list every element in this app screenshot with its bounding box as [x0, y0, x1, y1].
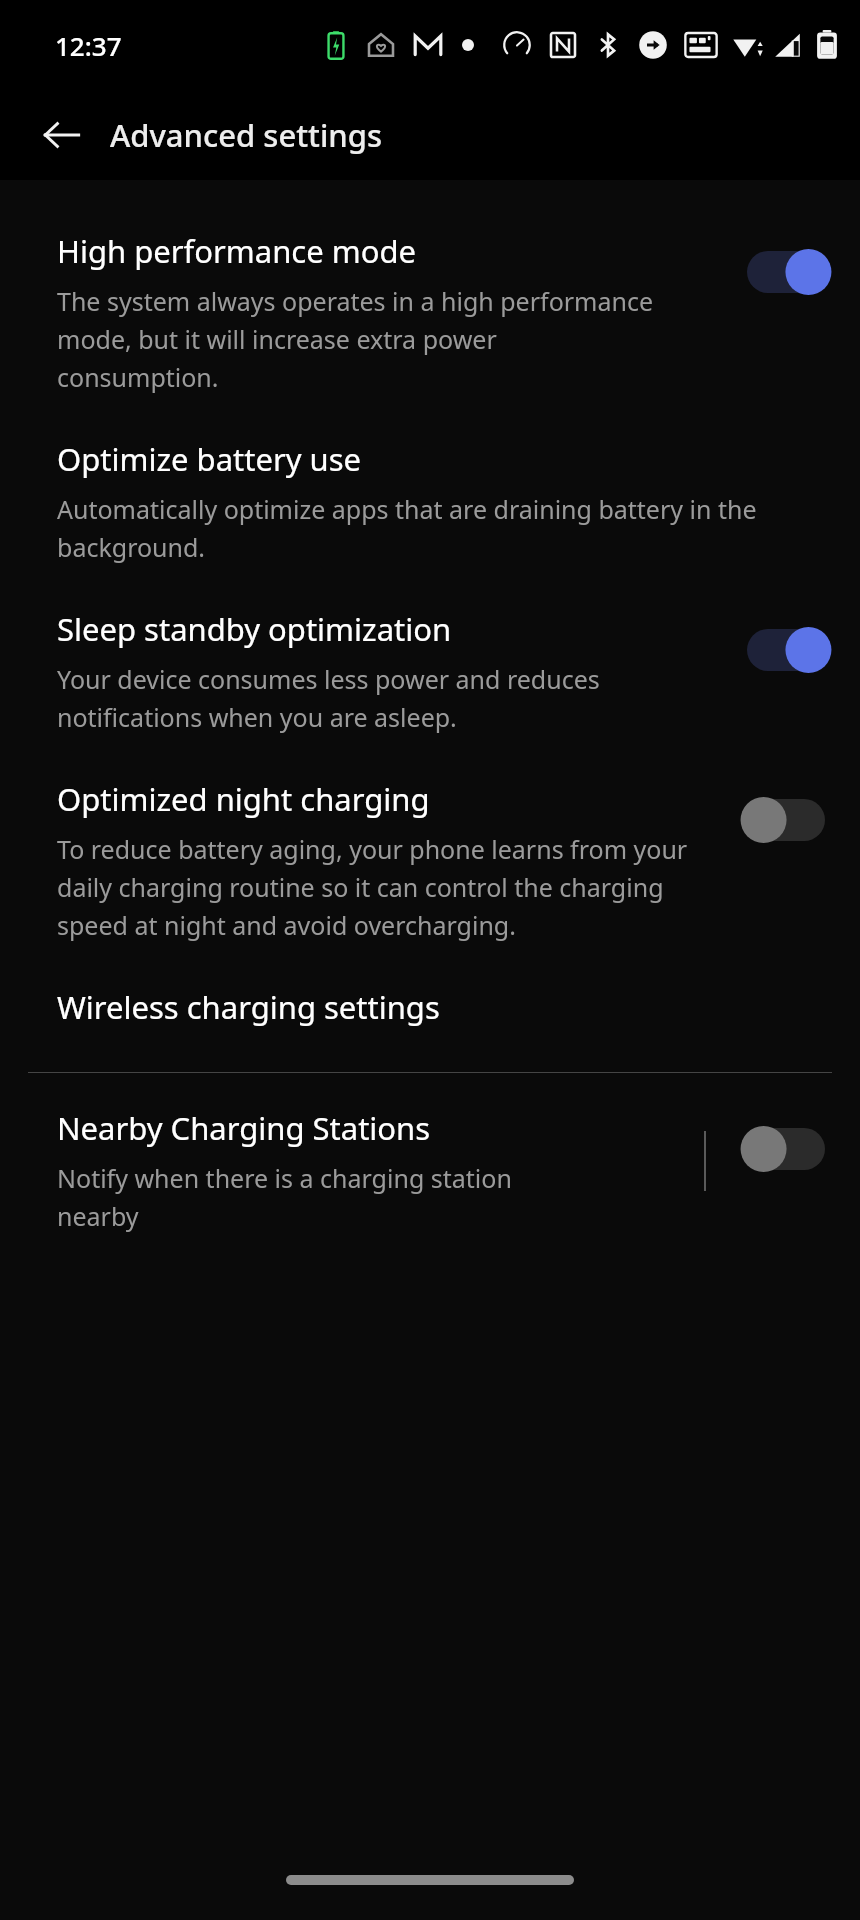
staticText: Automatically optimize apps that are dra… — [57, 492, 817, 564]
staticText: Optimized night charging — [57, 778, 430, 820]
staticText: Notify when there is a charging station … — [57, 1161, 577, 1233]
button[interactable]: High performance mode — [0, 208, 860, 416]
button[interactable]: Back — [32, 105, 92, 165]
staticText: Wireless charging settings — [57, 986, 440, 1028]
button[interactable]: Toggle on — [736, 624, 836, 676]
staticText: Nearby Charging Stations — [57, 1107, 431, 1149]
staticText: High performance mode — [57, 230, 417, 272]
button[interactable]: Sleep standby optimization — [0, 586, 860, 756]
button[interactable]: Toggle off — [736, 1123, 836, 1175]
button[interactable]: Toggle off — [736, 794, 836, 846]
staticText: Sleep standby optimization — [57, 608, 452, 650]
button[interactable]: Toggle on — [736, 246, 836, 298]
button[interactable]: Optimized night charging — [0, 756, 860, 964]
staticText: Advanced settings — [110, 114, 383, 156]
button[interactable]: Nearby Charging Stations — [57, 1103, 704, 1237]
staticText: To reduce battery aging, your phone lear… — [57, 832, 697, 942]
button[interactable]: Optimize battery use — [0, 416, 860, 586]
button[interactable]: Wireless charging settings — [0, 964, 860, 1050]
staticText: 12:37 — [55, 28, 122, 63]
staticText: Optimize battery use — [57, 438, 362, 480]
staticText: The system always operates in a high per… — [57, 284, 657, 394]
staticText: Your device consumes less power and redu… — [57, 662, 677, 734]
button[interactable]: Toggle off — [736, 1123, 836, 1175]
